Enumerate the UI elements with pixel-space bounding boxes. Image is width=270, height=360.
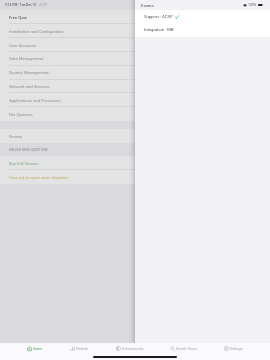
staticText: UNLOCK MORE QUESTIONS (9, 148, 48, 152)
staticText: Support - ACSP (144, 14, 173, 19)
button[interactable]: Support - ACSP (0, 10, 270, 23)
staticText: File Systems (9, 112, 33, 117)
staticText: Settings (230, 347, 243, 351)
staticText: User Accounts (9, 43, 37, 48)
button[interactable]: Settings (224, 343, 243, 354)
button[interactable]: Data Management (0, 51, 135, 65)
other: Battery (258, 4, 263, 6)
button[interactable]: Free Quiz (0, 10, 135, 24)
button[interactable]: Statistic (70, 343, 89, 354)
staticText: Exams (141, 3, 154, 8)
staticText: View ad, to open more chapters (9, 175, 68, 180)
staticText: System Management (9, 70, 49, 75)
staticText: Home (33, 347, 43, 351)
button[interactable]: Search Terms (170, 343, 197, 354)
staticText: ACSP (39, 3, 48, 7)
other: Wi-Fi (243, 4, 247, 7)
staticText: Network and Services (9, 84, 50, 89)
staticText: Applications and Processes (9, 98, 61, 103)
staticText: Statistic (76, 347, 89, 351)
staticText: Search Terms (176, 347, 197, 351)
button[interactable]: Applications and Processes (0, 93, 135, 107)
staticText: Data Management (9, 56, 44, 61)
button[interactable]: View ad, to open more chapters (0, 170, 135, 184)
button[interactable]: Integration - MB (0, 23, 270, 36)
staticText: Achievements (122, 347, 144, 351)
button[interactable]: System Management (0, 65, 135, 79)
button[interactable]: Review (0, 129, 135, 143)
button[interactable]: Home (27, 343, 43, 354)
staticText: 100% (248, 3, 257, 7)
button[interactable]: User Accounts (0, 38, 135, 52)
staticText: Buy Full Version (9, 161, 39, 166)
button[interactable]: Achievements (116, 343, 144, 354)
staticText: Review (9, 134, 23, 139)
button[interactable]: File Systems (0, 107, 135, 121)
button[interactable]: Installation and Configuration (0, 24, 135, 38)
staticText: Installation and Configuration (9, 29, 64, 34)
staticText: 9:13 PM · Tue Dec 10 (5, 3, 37, 7)
button[interactable]: Buy Full Version (0, 156, 135, 170)
button[interactable]: Network and Services (0, 79, 135, 93)
staticText: Free Quiz (9, 15, 27, 20)
staticText: Integration - MB (144, 27, 174, 32)
